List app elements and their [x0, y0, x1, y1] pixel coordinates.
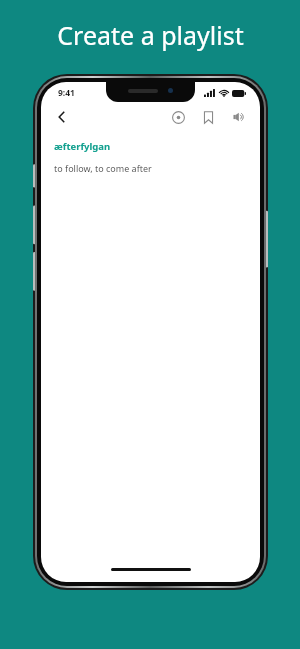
staticText: to follow, to come after — [54, 162, 152, 174]
button[interactable]: Pronunciation — [166, 105, 190, 129]
staticText: Create a playlist — [57, 18, 244, 52]
button[interactable]: Bookmark — [196, 105, 220, 129]
staticText: 9:41 — [58, 87, 75, 99]
staticText: æfterfylgan — [54, 140, 111, 153]
button[interactable]: Back — [49, 104, 75, 130]
button[interactable]: Listen — [226, 105, 250, 129]
